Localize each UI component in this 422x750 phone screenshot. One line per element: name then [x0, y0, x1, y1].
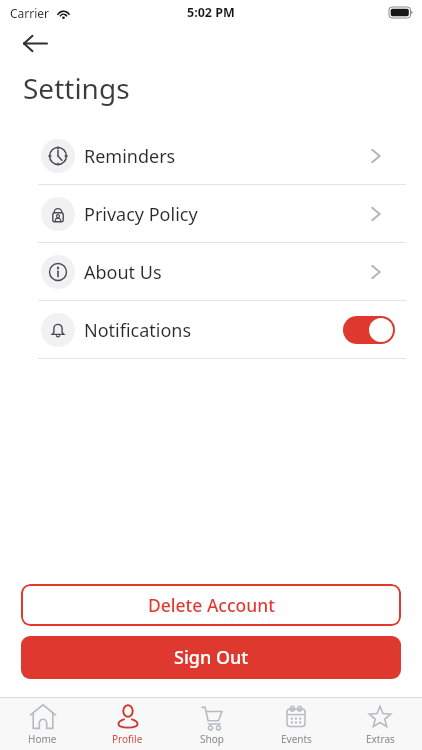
button[interactable]: Sign Out	[21, 636, 401, 679]
staticText: Carrier	[10, 5, 50, 21]
staticText: Sign Out	[174, 645, 249, 670]
staticText: Extras	[366, 732, 395, 746]
button[interactable]: Notifications	[0, 301, 422, 359]
button[interactable]	[343, 316, 395, 344]
staticText: Settings	[23, 69, 130, 107]
button[interactable]	[16, 29, 54, 57]
staticText: Profile	[112, 732, 143, 746]
staticText: Events	[281, 732, 312, 746]
button[interactable]: Delete Account	[21, 584, 401, 626]
button[interactable]: Reminders	[0, 127, 422, 185]
staticText: Home	[28, 732, 57, 746]
staticText: Shop	[200, 732, 224, 746]
button[interactable]: Profile	[85, 698, 170, 750]
button[interactable]: Privacy Policy	[0, 185, 422, 243]
button[interactable]: About Us	[0, 243, 422, 301]
staticText: 5:02 PM	[187, 4, 235, 21]
staticText: Delete Account	[148, 593, 275, 617]
staticText: Notifications	[84, 318, 192, 343]
button[interactable]: Home	[0, 698, 85, 750]
button[interactable]: Extras	[338, 698, 422, 750]
button[interactable]: Events	[254, 698, 338, 750]
staticText: Privacy Policy	[84, 202, 198, 227]
button[interactable]: Shop	[170, 698, 254, 750]
staticText: About Us	[84, 260, 162, 285]
staticText: Reminders	[84, 144, 176, 169]
